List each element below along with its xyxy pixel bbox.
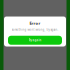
staticText: Error xyxy=(29,21,40,26)
button[interactable]: Try again xyxy=(8,36,62,45)
staticText: Something went wrong, try again. xyxy=(11,28,58,31)
staticText: Try again xyxy=(28,38,41,42)
